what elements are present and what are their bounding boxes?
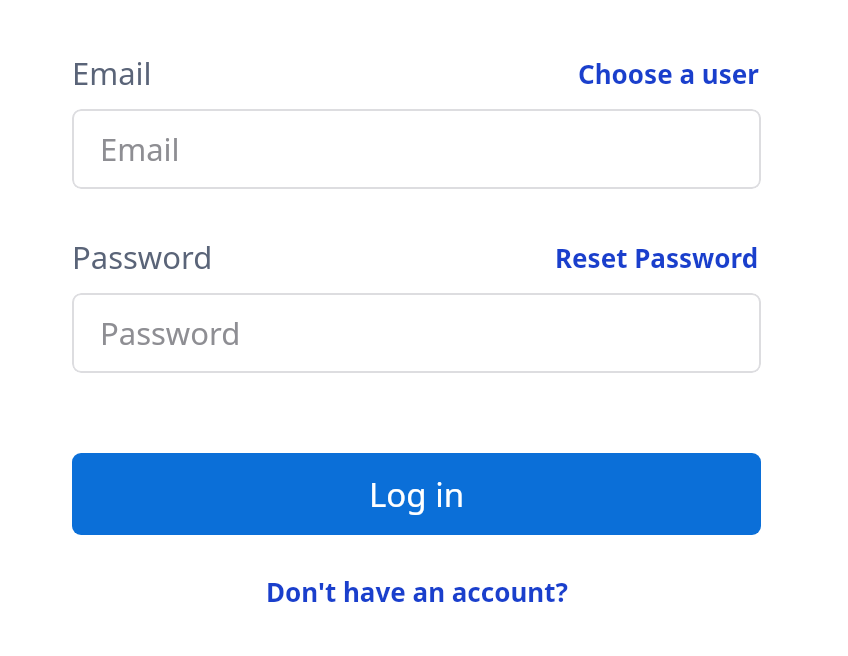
button[interactable]: Don't have an account? (262, 572, 572, 611)
button[interactable]: Log in (72, 453, 761, 535)
staticText: Password (100, 312, 241, 354)
staticText: Log in (369, 472, 465, 517)
staticText: Email (72, 52, 152, 94)
staticText: Choose a user (578, 56, 759, 91)
button[interactable]: Password (72, 293, 761, 373)
button[interactable]: Choose a user (576, 54, 761, 93)
button[interactable]: Email (72, 109, 761, 189)
staticText: Password (72, 236, 213, 278)
staticText: Reset Password (555, 240, 759, 275)
staticText: Don't have an account? (266, 574, 568, 609)
button[interactable]: Reset Password (553, 238, 761, 277)
staticText: Email (100, 128, 180, 170)
